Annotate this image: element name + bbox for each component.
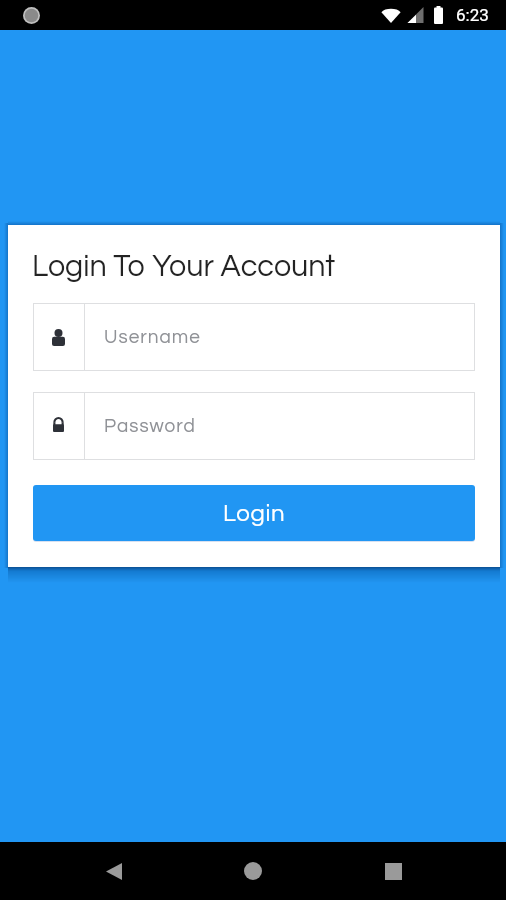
button[interactable]: Recent apps xyxy=(368,846,418,896)
button[interactable]: Username xyxy=(33,303,475,371)
button[interactable]: Back xyxy=(89,846,139,896)
staticText: Username xyxy=(104,327,201,347)
staticText: Login To Your Account xyxy=(32,251,336,282)
staticText: 6:23 xyxy=(456,5,489,25)
button[interactable]: Password xyxy=(33,392,475,460)
button[interactable]: Login xyxy=(33,485,475,541)
button[interactable]: Home xyxy=(228,846,278,896)
staticText: Password xyxy=(104,416,196,436)
staticText: Login xyxy=(223,501,286,526)
